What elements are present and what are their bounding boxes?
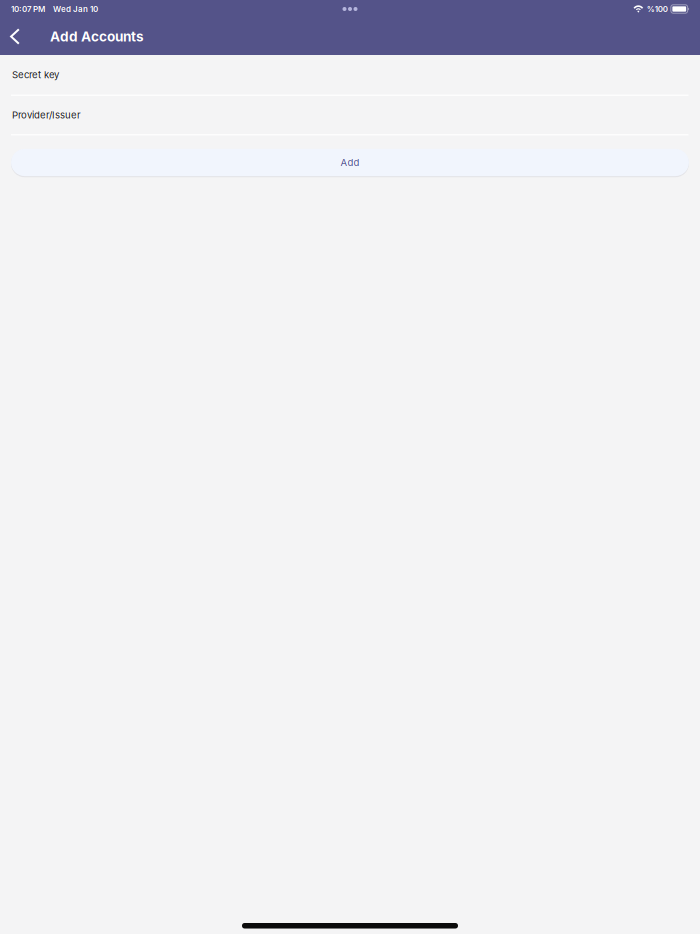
button[interactable]: Secret key — [0, 55, 700, 96]
staticText: Wed Jan 10 — [53, 4, 98, 14]
staticText: %100 — [647, 4, 668, 14]
button[interactable]: Back — [1, 18, 29, 55]
button[interactable]: Add — [11, 148, 689, 177]
staticText: 10:07 PM — [11, 4, 45, 14]
staticText: Add — [340, 157, 359, 168]
staticText: Add Accounts — [50, 28, 144, 45]
staticText: Provider/Issuer — [12, 109, 81, 121]
button[interactable]: Provider/Issuer — [0, 96, 700, 135]
staticText: Secret key — [12, 69, 59, 81]
